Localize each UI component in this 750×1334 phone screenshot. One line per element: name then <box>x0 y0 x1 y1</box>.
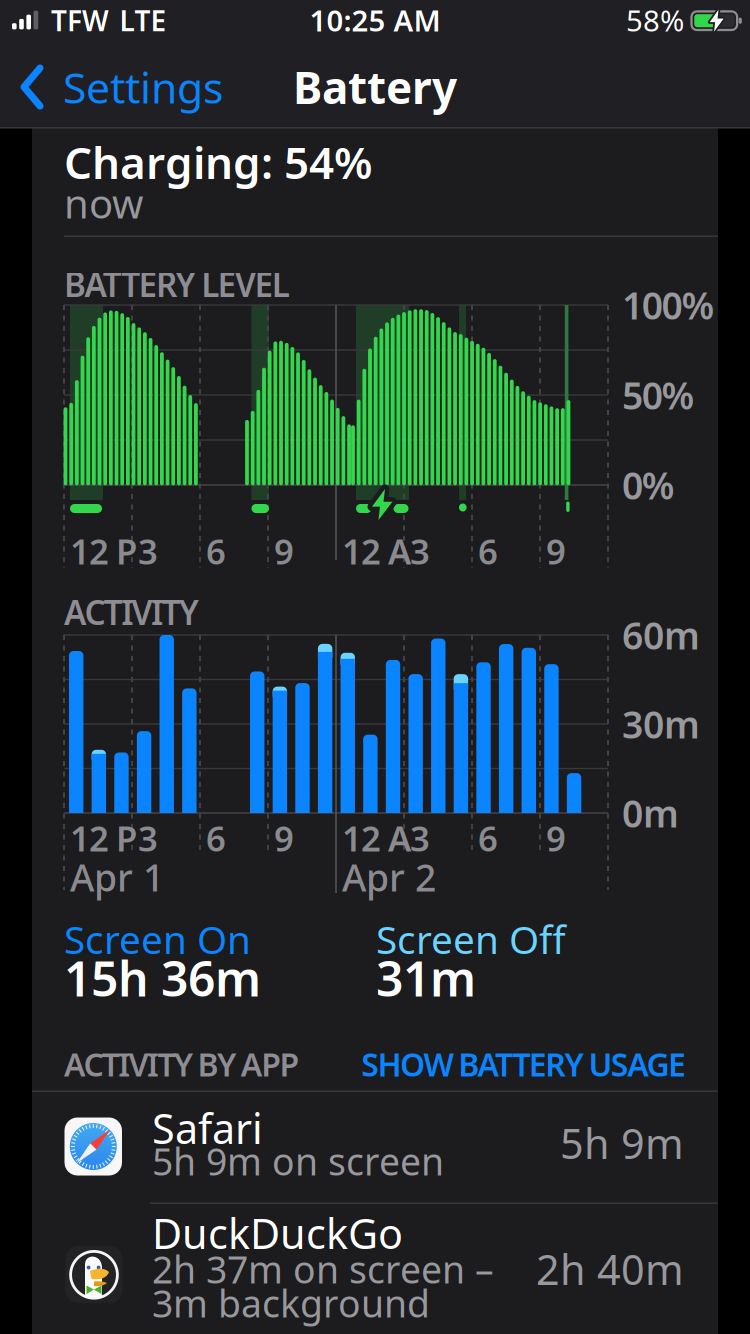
staticText: 30m <box>622 699 700 749</box>
staticText: 3 <box>138 528 158 574</box>
staticText: ACTIVITY BY APP <box>64 1043 300 1085</box>
staticText: 12 A <box>342 815 411 861</box>
button[interactable]: Back to Settings <box>20 57 300 117</box>
staticText: 15h 36m <box>64 946 261 1010</box>
staticText: LTE <box>119 2 166 39</box>
staticText: Apr 2 <box>342 852 436 902</box>
staticText: 2h 40m <box>536 1242 684 1296</box>
staticText: Battery <box>293 58 457 116</box>
staticText: Safari <box>152 1101 263 1155</box>
staticText: 10:25 AM <box>309 0 440 39</box>
staticText: Screen Off <box>376 913 566 965</box>
staticText: 6 <box>206 528 226 574</box>
staticText: DuckDuckGo <box>152 1206 403 1260</box>
staticText: 3m background <box>152 1278 430 1328</box>
staticText: 6 <box>478 528 498 574</box>
staticText: Charging: 54% <box>64 133 373 191</box>
staticText: now <box>64 176 143 229</box>
staticText: Settings <box>63 59 223 115</box>
staticText: 12 P <box>70 528 137 574</box>
staticText: 6 <box>478 815 498 861</box>
staticText: 0% <box>622 460 675 510</box>
staticText: 9 <box>274 815 294 861</box>
staticText: 9 <box>274 528 294 574</box>
staticText: 5h 9m <box>560 1116 684 1170</box>
staticText: 9 <box>546 528 566 574</box>
staticText: BATTERY LEVEL <box>64 262 290 306</box>
staticText: TFW <box>51 2 109 39</box>
staticText: Apr 1 <box>70 852 164 902</box>
staticText: 9 <box>546 815 566 861</box>
staticText: 3 <box>410 815 430 861</box>
staticText: 3 <box>410 528 430 574</box>
staticText: 31m <box>376 946 476 1010</box>
staticText: Screen On <box>64 913 251 965</box>
staticText: 3 <box>138 815 158 861</box>
staticText: 12 A <box>342 528 411 574</box>
staticText: 50% <box>622 370 695 420</box>
staticText: 6 <box>206 815 226 861</box>
button[interactable]: DuckDuckGo <box>32 1203 718 1334</box>
staticText: 100% <box>622 280 714 330</box>
staticText: 5h 9m on screen <box>152 1136 444 1186</box>
button[interactable]: Safari <box>32 1091 718 1203</box>
staticText: SHOW BATTERY USAGE <box>361 1043 686 1085</box>
staticText: 58% <box>626 0 684 39</box>
staticText: 12 P <box>70 815 137 861</box>
staticText: 0m <box>622 788 679 838</box>
staticText: 2h 37m on screen – <box>152 1244 494 1294</box>
button[interactable]: SHOW BATTERY USAGE <box>86 1043 686 1085</box>
staticText: ACTIVITY <box>64 590 199 634</box>
staticText: 60m <box>622 610 700 660</box>
